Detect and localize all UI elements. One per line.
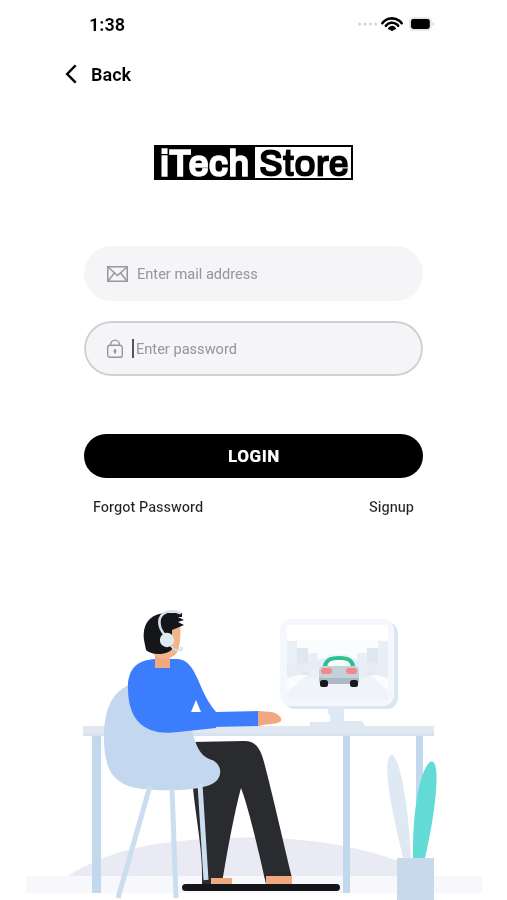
staticText: Forgot Password [93, 499, 204, 516]
staticText: Enter mail address [137, 265, 258, 282]
staticText: Signup [369, 499, 414, 516]
staticText: LOGIN [228, 446, 280, 466]
button[interactable]: Enter password [84, 321, 423, 376]
staticText: Store [259, 144, 349, 179]
staticText: iTech [160, 144, 250, 179]
button[interactable]: Back [56, 59, 146, 88]
button[interactable]: Enter mail address [84, 246, 423, 301]
staticText: Enter password [136, 340, 237, 357]
button[interactable]: Forgot Password [93, 499, 204, 516]
button[interactable]: LOGIN [84, 434, 423, 478]
staticText: Back [91, 64, 132, 85]
staticText: 1:38 [89, 14, 126, 35]
button[interactable]: Signup [369, 499, 414, 516]
